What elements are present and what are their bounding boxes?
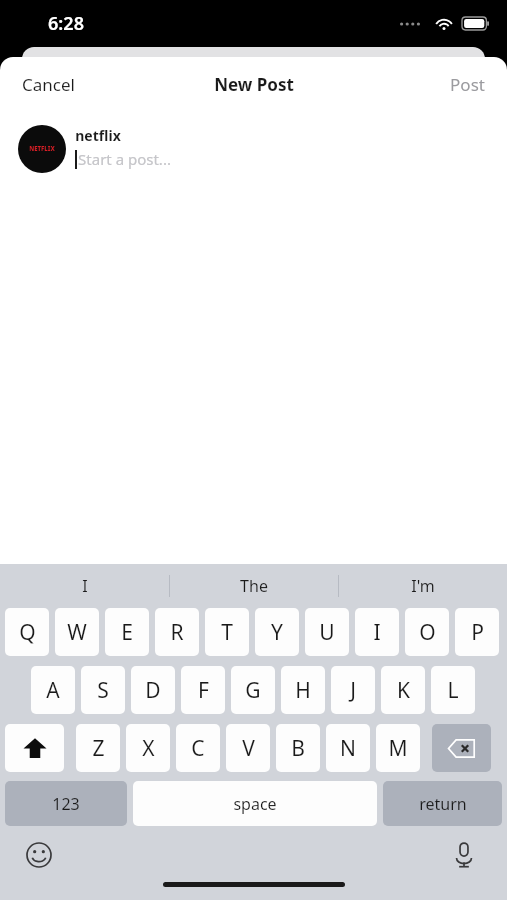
button[interactable]: R — [155, 608, 199, 656]
staticText: H — [295, 676, 311, 705]
staticText: B — [291, 734, 305, 763]
staticText: Post — [450, 73, 485, 96]
button[interactable]: T — [205, 608, 249, 656]
button[interactable]: I'm — [339, 564, 507, 608]
button[interactable]: A — [31, 666, 75, 714]
button[interactable]: I — [355, 608, 399, 656]
staticText: return — [419, 793, 467, 815]
staticText: P — [471, 618, 484, 647]
button[interactable]: L — [431, 666, 475, 714]
button[interactable]: D — [131, 666, 175, 714]
staticText: D — [145, 676, 161, 705]
button[interactable]: The — [170, 564, 338, 608]
staticText: I — [373, 618, 381, 647]
staticText: I — [82, 575, 88, 597]
staticText: S — [97, 676, 109, 705]
staticText: M — [388, 734, 408, 763]
button[interactable]: H — [281, 666, 325, 714]
staticText: E — [121, 618, 133, 647]
button[interactable]: Profile photo — [18, 125, 66, 173]
button[interactable]: B — [276, 724, 320, 772]
staticText: netflix — [75, 126, 121, 145]
staticText: O — [419, 618, 436, 647]
staticText: J — [350, 676, 356, 705]
staticText: R — [170, 618, 184, 647]
staticText: W — [67, 618, 87, 647]
button[interactable]: J — [331, 666, 375, 714]
staticText: Cancel — [22, 73, 75, 96]
staticText: G — [245, 676, 261, 705]
button[interactable]: Cancel — [0, 63, 97, 106]
button[interactable]: N — [326, 724, 370, 772]
button[interactable]: U — [305, 608, 349, 656]
button[interactable]: 123 — [5, 781, 127, 826]
button[interactable]: E — [105, 608, 149, 656]
staticText: Start a post... — [78, 149, 171, 169]
button[interactable]: C — [176, 724, 220, 772]
button[interactable]: Dictation — [447, 838, 481, 872]
staticText: I'm — [411, 575, 435, 597]
staticText: L — [447, 676, 459, 705]
staticText: T — [221, 618, 233, 647]
button[interactable]: Backspace — [432, 724, 491, 772]
button[interactable]: G — [231, 666, 275, 714]
button[interactable]: Q — [5, 608, 49, 656]
button[interactable]: Z — [76, 724, 120, 772]
staticText: C — [191, 734, 205, 763]
staticText: The — [240, 575, 268, 597]
button[interactable]: M — [376, 724, 420, 772]
staticText: Z — [92, 734, 105, 763]
staticText: Y — [271, 618, 283, 647]
button[interactable]: F — [181, 666, 225, 714]
staticText: K — [397, 676, 410, 705]
staticText: U — [319, 618, 335, 647]
staticText: V — [242, 734, 255, 763]
button[interactable]: Post — [428, 63, 507, 106]
staticText: NETFLIX — [29, 145, 55, 153]
button[interactable]: K — [381, 666, 425, 714]
staticText: space — [233, 793, 277, 815]
staticText: N — [340, 734, 356, 763]
staticText: New Post — [214, 73, 294, 96]
staticText: X — [142, 734, 155, 763]
button[interactable]: V — [226, 724, 270, 772]
staticText: 123 — [52, 793, 80, 815]
button[interactable]: Shift — [5, 724, 64, 772]
staticText: A — [46, 676, 60, 705]
button[interactable]: Emoji — [22, 838, 56, 872]
staticText: Q — [19, 618, 36, 647]
button[interactable]: X — [126, 724, 170, 772]
staticText: 6:28 — [48, 11, 84, 36]
button[interactable]: P — [455, 608, 499, 656]
button[interactable]: I — [0, 564, 169, 608]
button[interactable]: O — [405, 608, 449, 656]
button[interactable]: Y — [255, 608, 299, 656]
button[interactable]: W — [55, 608, 99, 656]
button[interactable]: return — [383, 781, 502, 826]
staticText: F — [198, 676, 209, 705]
button[interactable]: S — [81, 666, 125, 714]
button[interactable]: space — [133, 781, 377, 826]
